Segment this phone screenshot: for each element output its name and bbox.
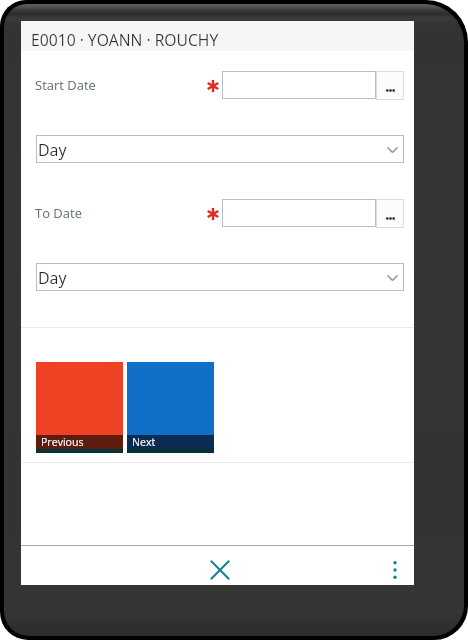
button[interactable]: Browse <box>376 199 404 228</box>
button[interactable]: Next <box>127 362 214 453</box>
button[interactable]: Previous <box>36 362 123 453</box>
button[interactable]: E0010 · YOANN · ROUCHY <box>21 21 414 51</box>
button[interactable]: Close <box>199 552 240 588</box>
staticText: Previous <box>41 435 84 449</box>
button[interactable]: Day <box>36 263 404 291</box>
button[interactable] <box>222 199 376 227</box>
button[interactable]: Day <box>36 135 404 163</box>
button[interactable] <box>222 71 376 99</box>
staticText: Start Date <box>35 76 96 94</box>
button[interactable]: Browse <box>376 71 404 100</box>
staticText: Next <box>132 435 156 449</box>
staticText: Day <box>38 267 67 289</box>
button[interactable]: More options <box>378 552 414 588</box>
staticText: To Date <box>35 204 82 222</box>
staticText: E0010 · YOANN · ROUCHY <box>31 29 219 50</box>
staticText: Day <box>38 139 67 161</box>
